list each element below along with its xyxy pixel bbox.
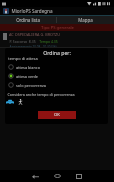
staticText: OK [54, 112, 60, 118]
staticText: solo percorrenza [16, 83, 46, 88]
button[interactable]: Recenti [73, 170, 85, 182]
button[interactable]: A piedi [18, 99, 23, 105]
staticText: AC OSPEDALIERA G. BROTZU [9, 32, 60, 37]
staticText: Ordina per: [43, 49, 71, 56]
staticText: Mappa [78, 17, 93, 23]
button[interactable]: attesa bianco [8, 63, 108, 71]
button[interactable]: attesa verde [8, 72, 108, 80]
staticText: attesa verde [16, 74, 38, 79]
button[interactable]: OK [38, 111, 76, 119]
button[interactable]: Auto [6, 99, 14, 105]
staticText: tempo di attesa [8, 56, 38, 61]
staticText: P. Soccorso 8.35 [9, 39, 36, 44]
button[interactable]: Mappa [57, 16, 114, 24]
button[interactable]: MiorloPS Sardegna [0, 7, 114, 15]
button[interactable]: AC OSPEDALIERA G. BROTZU [0, 31, 114, 47]
staticText: MiorloPS Sardegna [11, 8, 53, 14]
staticText: Ordina lista [16, 17, 40, 23]
button[interactable]: solo percorrenza [8, 81, 108, 89]
button[interactable]: Considera anche tempo di percorrenza [6, 91, 108, 98]
staticText: Aggiornamento 20.08 - 20.30 (3h) [9, 45, 57, 47]
button[interactable]: Home [51, 170, 63, 182]
button[interactable]: Ordina lista [0, 16, 56, 24]
staticText: Tempo 4.35 [39, 39, 58, 44]
button[interactable]: Indietro [29, 170, 41, 182]
staticText: Tipo PS generale [41, 25, 74, 31]
staticText: attesa bianco [16, 65, 40, 70]
staticText: Considera anche tempo di percorrenza [7, 92, 75, 97]
